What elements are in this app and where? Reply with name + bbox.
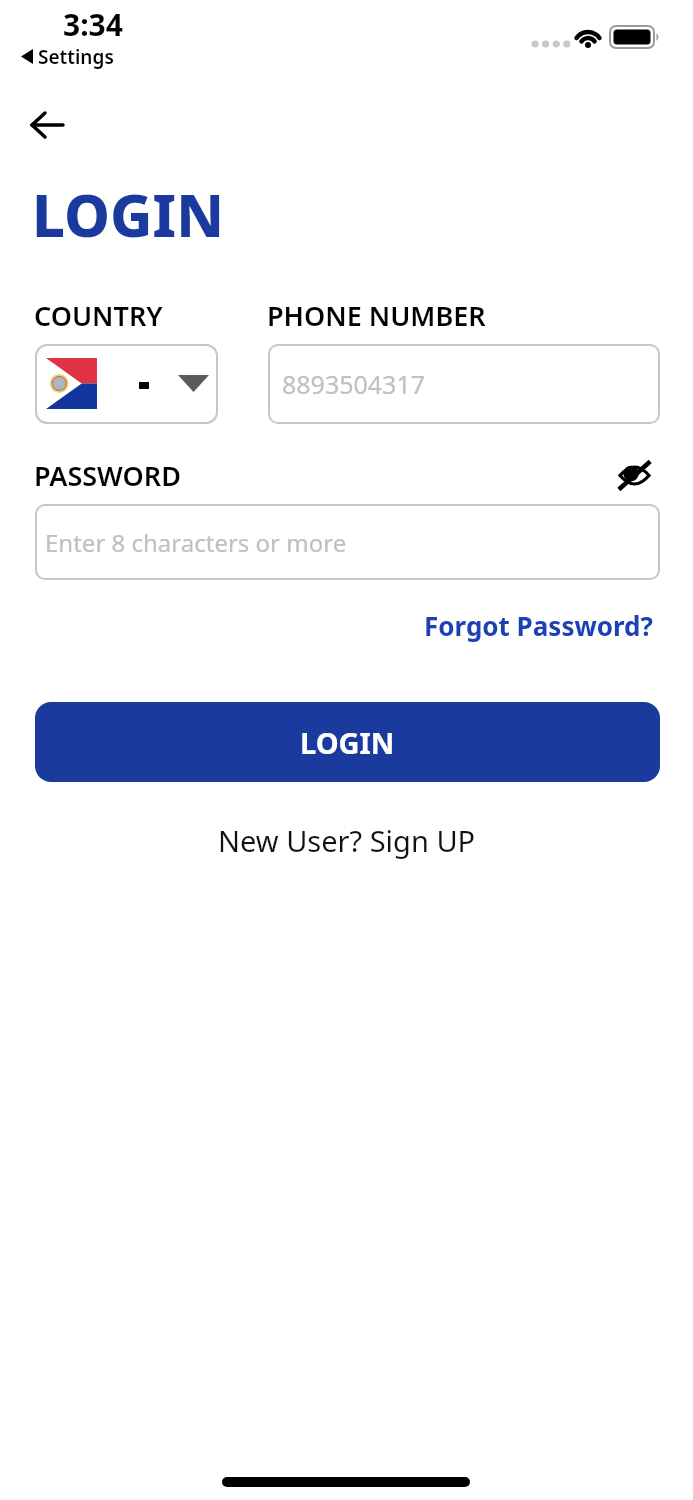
button[interactable]: Enter 8 characters or more (35, 504, 660, 580)
staticText: 3:34 (63, 4, 123, 45)
staticText: Forgot Password? (424, 608, 653, 643)
staticText: LOGIN (300, 723, 395, 762)
button[interactable]: LOGIN (35, 702, 660, 782)
staticText: PASSWORD (34, 457, 181, 494)
button[interactable]: Settings (14, 44, 124, 70)
button[interactable]: 8893504317 (268, 344, 660, 424)
button[interactable]: Forgot Password? (398, 605, 653, 645)
button[interactable] (35, 344, 218, 424)
staticText: COUNTRY (34, 297, 163, 334)
staticText: PHONE NUMBER (267, 297, 486, 334)
button[interactable] (612, 455, 656, 495)
button[interactable] (20, 105, 76, 145)
staticText: New User? Sign UP (218, 821, 476, 860)
staticText: Settings (38, 44, 114, 70)
staticText: Enter 8 characters or more (45, 526, 347, 559)
staticText: 8893504317 (282, 367, 426, 401)
button[interactable]: New User? Sign UP (0, 818, 693, 862)
staticText: LOGIN (32, 175, 225, 254)
